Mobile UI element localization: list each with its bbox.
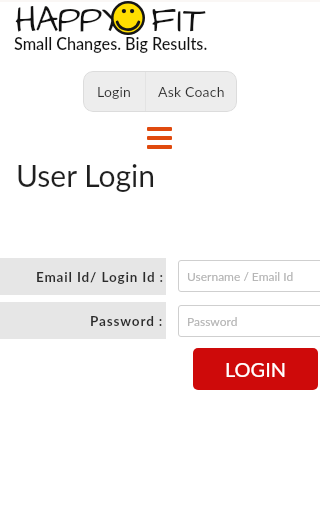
staticText: Password : <box>90 313 164 329</box>
staticText: Ask Coach <box>158 83 225 100</box>
button[interactable]: Password <box>178 305 320 337</box>
staticText: Username / Email Id <box>187 269 294 283</box>
button[interactable]: Menu <box>147 127 172 150</box>
staticText: Login <box>97 83 132 100</box>
staticText: User Login <box>16 157 155 193</box>
staticText: Password <box>187 314 238 328</box>
staticText: Email Id/ Login Id : <box>36 269 164 285</box>
staticText: HAPPY <box>15 0 120 45</box>
staticText: FIT <box>151 0 207 45</box>
button[interactable]: Ask Coach <box>146 71 237 112</box>
staticText: Small Changes. Big Results. <box>14 34 208 53</box>
button[interactable]: LOGIN <box>193 348 318 390</box>
staticText: LOGIN <box>225 357 287 381</box>
button[interactable]: Username / Email Id <box>178 260 320 292</box>
button[interactable]: Login <box>83 71 145 112</box>
